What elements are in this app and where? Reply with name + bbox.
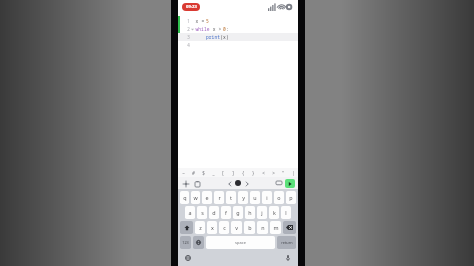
button[interactable]: c — [219, 221, 229, 234]
button[interactable]: w — [191, 191, 200, 204]
staticText: a — [188, 209, 192, 216]
staticText: f — [225, 209, 227, 216]
button[interactable]: Paste — [193, 179, 202, 188]
staticText: l — [285, 209, 287, 216]
staticText: = — [200, 18, 206, 24]
staticText: w — [193, 194, 198, 201]
staticText: < — [262, 170, 265, 176]
button[interactable]: { — [238, 168, 248, 177]
staticText: 2 — [187, 26, 190, 32]
button[interactable]: i — [262, 191, 272, 204]
button[interactable]: o — [274, 191, 284, 204]
staticText: k — [273, 209, 276, 216]
staticText: > — [272, 170, 275, 176]
staticText: b — [248, 224, 252, 231]
staticText: o — [277, 194, 281, 201]
button[interactable]: [ — [218, 168, 228, 177]
staticText: 3 — [187, 34, 190, 40]
button[interactable]: k — [269, 206, 279, 219]
button[interactable]: u — [250, 191, 260, 204]
button[interactable]: return — [277, 236, 296, 249]
button[interactable]: Undo — [226, 180, 233, 187]
button[interactable]: n — [257, 221, 268, 234]
button[interactable]: v — [231, 221, 242, 234]
button[interactable]: " — [278, 168, 288, 177]
button[interactable]: Dictation — [284, 254, 292, 262]
button[interactable]: ~ — [178, 168, 188, 177]
button[interactable]: 123 — [180, 236, 191, 249]
button[interactable]: Shift — [180, 221, 193, 234]
staticText: p — [289, 194, 293, 201]
staticText: m — [273, 224, 279, 231]
staticText: u — [253, 194, 257, 201]
button[interactable]: space — [206, 236, 275, 249]
staticText: $ — [202, 170, 205, 176]
button[interactable]: } — [248, 168, 258, 177]
button[interactable]: Backspace — [283, 221, 296, 234]
staticText: { — [242, 170, 244, 176]
button[interactable]: g — [233, 206, 243, 219]
button[interactable]: r — [214, 191, 224, 204]
staticText: return — [281, 240, 293, 245]
button[interactable]: _ — [208, 168, 218, 177]
button[interactable]: a — [185, 206, 195, 219]
button[interactable]: | — [288, 168, 298, 177]
button[interactable]: d — [209, 206, 219, 219]
staticText: v — [235, 224, 238, 231]
button[interactable]: < — [258, 168, 268, 177]
staticText: print — [206, 34, 220, 40]
button[interactable]: e — [202, 191, 212, 204]
button[interactable]: p — [286, 191, 296, 204]
staticText: c — [223, 224, 226, 231]
button[interactable]: ] — [228, 168, 238, 177]
staticText: space — [235, 240, 246, 245]
staticText: x > — [211, 26, 223, 32]
staticText: g — [236, 209, 240, 216]
staticText: h — [248, 209, 252, 216]
button[interactable]: z — [195, 221, 205, 234]
staticText: r — [218, 194, 221, 201]
button[interactable]: Move cursor — [181, 179, 190, 188]
button[interactable]: q — [180, 191, 189, 204]
button[interactable]: Redo — [243, 180, 250, 187]
staticText: 5 — [206, 18, 209, 24]
button[interactable]: Emoji — [193, 236, 204, 249]
button[interactable]: $ — [198, 168, 208, 177]
staticText: 4 — [187, 42, 190, 48]
staticText: | — [292, 170, 295, 176]
button[interactable]: s — [197, 206, 207, 219]
button[interactable]: Switch language — [184, 254, 192, 262]
button[interactable]: f — [221, 206, 231, 219]
staticText: } — [252, 170, 254, 176]
button[interactable]: # — [188, 168, 198, 177]
staticText: x — [194, 18, 200, 24]
staticText: ~ — [182, 170, 185, 176]
button[interactable]: j — [257, 206, 267, 219]
staticText: ] — [232, 170, 234, 176]
staticText: _ — [212, 170, 215, 176]
button[interactable]: m — [270, 221, 281, 234]
staticText: 09:23 — [186, 4, 197, 10]
staticText: 1 — [187, 18, 190, 24]
staticText: i — [266, 194, 268, 201]
staticText: d — [212, 209, 216, 216]
staticText: # — [192, 170, 195, 176]
staticText: [ — [222, 170, 224, 176]
staticText: s — [201, 209, 204, 216]
staticText: 0 — [223, 26, 226, 32]
button[interactable]: Run — [285, 179, 295, 188]
button[interactable]: Cursor control — [233, 178, 243, 188]
button[interactable]: y — [238, 191, 248, 204]
button[interactable]: b — [244, 221, 255, 234]
staticText: t — [230, 194, 232, 201]
staticText: e — [205, 194, 209, 201]
button[interactable]: h — [245, 206, 255, 219]
button[interactable]: > — [268, 168, 278, 177]
button[interactable]: t — [226, 191, 236, 204]
staticText: j — [261, 209, 263, 216]
button[interactable]: l — [281, 206, 291, 219]
button[interactable]: Hide keyboard — [274, 179, 283, 188]
button[interactable]: x — [207, 221, 217, 234]
staticText: x — [211, 224, 214, 231]
